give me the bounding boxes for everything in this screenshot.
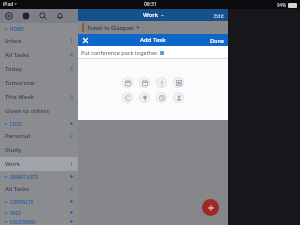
button[interactable]: Close [78, 37, 92, 43]
button[interactable]: Repeat [122, 92, 133, 103]
staticText: Today [5, 65, 70, 73]
staticText: HOME [10, 26, 74, 32]
button[interactable]: Edit [210, 10, 228, 21]
staticText: Travel to Glasgow * [87, 24, 140, 31]
staticText: LISTS [10, 121, 69, 127]
button[interactable]: LISTS [0, 118, 78, 129]
button[interactable]: Given to others [0, 104, 78, 118]
staticText: Add Task [140, 36, 166, 44]
staticText: 4 [70, 186, 73, 193]
staticText: iPad ᵞ [3, 1, 17, 8]
staticText: Done [210, 37, 224, 44]
button[interactable]: Start date [139, 77, 150, 88]
button[interactable]: Account [22, 12, 30, 20]
button[interactable]: Assign [173, 92, 184, 103]
staticText: Given to others [5, 107, 73, 115]
staticText: LOCATIONS [10, 219, 69, 225]
button[interactable]: TAGS [0, 207, 78, 218]
button[interactable]: HOME [0, 23, 78, 34]
button[interactable]: Done [206, 35, 228, 46]
button[interactable]: All Tasks [0, 48, 78, 62]
staticText: 09:31 [144, 1, 157, 8]
button[interactable]: Reminder [156, 92, 167, 103]
button[interactable]: Put conference pack together. [78, 46, 228, 58]
staticText: Work [143, 11, 159, 19]
staticText: Put conference pack together. [81, 49, 158, 56]
staticText: 3 [70, 94, 73, 101]
button[interactable]: Personal [0, 129, 78, 143]
staticText: 2 [70, 133, 73, 140]
staticText: Tomorrow [5, 79, 73, 87]
staticText: Study [5, 146, 73, 154]
button[interactable]: CONTACTS [0, 196, 78, 207]
button[interactable]: Work [0, 157, 78, 171]
button[interactable]: Notifications [56, 12, 64, 20]
button[interactable]: Study [0, 143, 78, 157]
button[interactable]: List [173, 77, 184, 88]
staticText: Inbox [5, 37, 70, 45]
button[interactable]: Inbox [0, 34, 78, 48]
button[interactable]: Add task [202, 199, 219, 216]
staticText: All Tasks [5, 185, 70, 193]
staticText: All Tasks [5, 51, 70, 59]
button[interactable]: All Tasks [0, 182, 78, 196]
staticText: CONTACTS [10, 199, 69, 205]
staticText: Edit [214, 12, 224, 19]
button[interactable]: Today [0, 62, 78, 76]
staticText: Work [5, 160, 70, 168]
staticText: 4 [70, 52, 73, 59]
button[interactable]: This Week [0, 90, 78, 104]
button[interactable]: Search [39, 12, 47, 20]
staticText: This Week [5, 93, 70, 101]
staticText: TAGS [10, 210, 69, 216]
button[interactable]: Due date [122, 77, 133, 88]
button[interactable]: Priority [156, 77, 167, 88]
button[interactable]: LOCATIONS [0, 218, 78, 225]
button[interactable]: Tomorrow [0, 76, 78, 90]
button[interactable]: Note [139, 92, 150, 103]
staticText: 1 [70, 161, 73, 168]
staticText: 3 [70, 66, 73, 73]
staticText: Personal [5, 132, 70, 140]
button[interactable]: Settings [5, 12, 13, 20]
staticText: SMART LISTS [10, 174, 69, 180]
staticText: 94% [277, 2, 286, 8]
staticText: 1 [70, 38, 73, 45]
button[interactable]: SMART LISTS [0, 171, 78, 182]
button[interactable]: Travel to Glasgow * [78, 21, 228, 34]
